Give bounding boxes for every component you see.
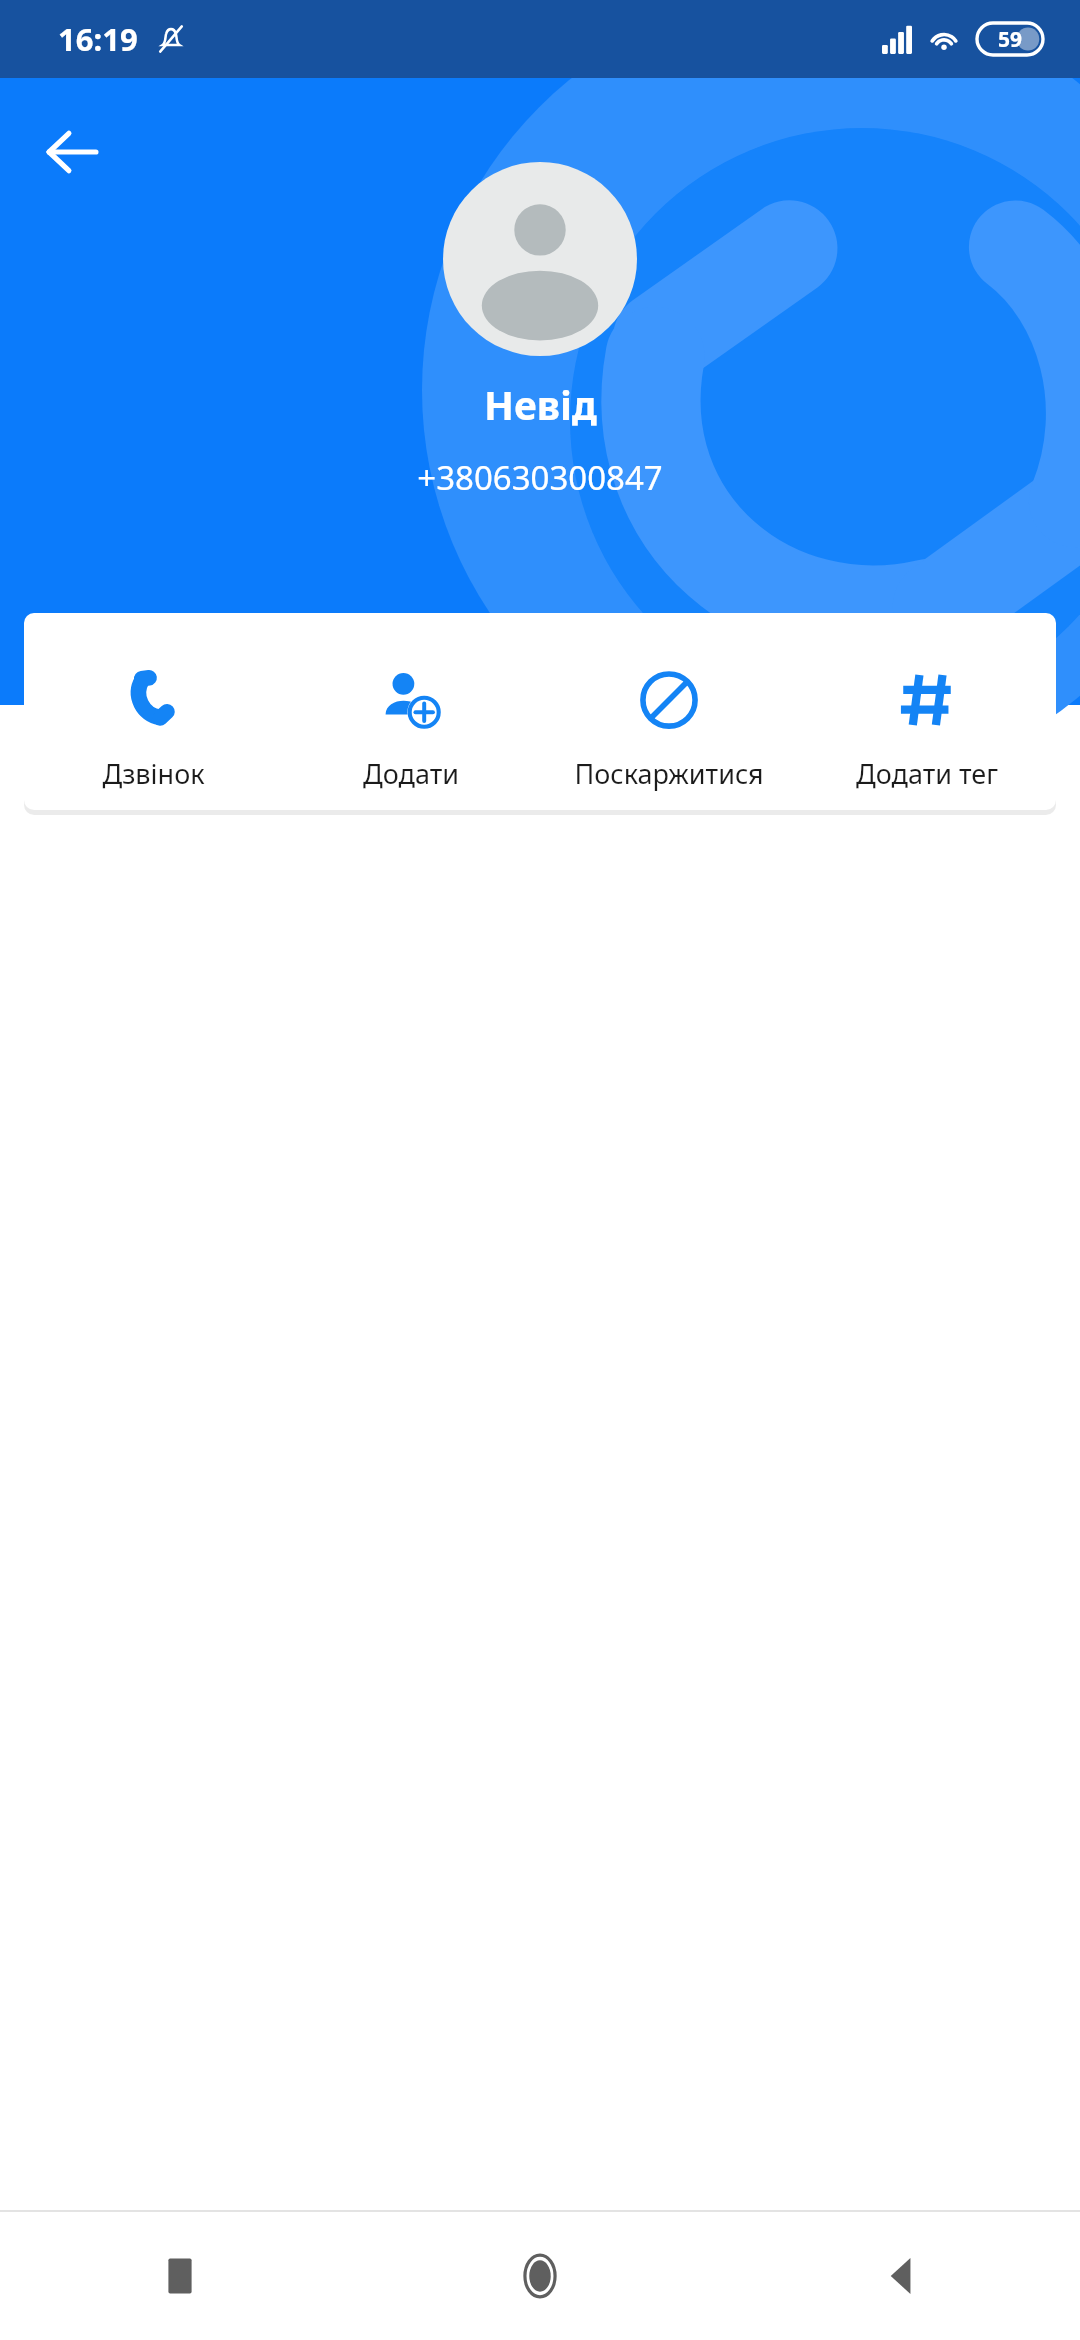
button[interactable]: Recents [0, 2212, 360, 2340]
staticText: +380630300847 [417, 455, 663, 500]
staticText: Невід [484, 378, 597, 431]
staticText: 16:19 [58, 18, 138, 60]
staticText: 59 [998, 25, 1023, 54]
button[interactable]: Додати тег [798, 613, 1056, 810]
button[interactable]: Home [360, 2212, 720, 2340]
button[interactable]: Back [720, 2212, 1080, 2340]
button[interactable]: Додати [282, 613, 540, 810]
button[interactable]: Back [24, 104, 120, 200]
button[interactable]: Дзвінок [24, 613, 282, 810]
staticText: Дзвінок [102, 755, 205, 792]
button[interactable]: Поскаржитися [540, 613, 798, 810]
staticText: Додати [363, 755, 459, 792]
staticText: Поскаржитися [574, 755, 764, 792]
staticText: Додати тег [856, 755, 998, 792]
